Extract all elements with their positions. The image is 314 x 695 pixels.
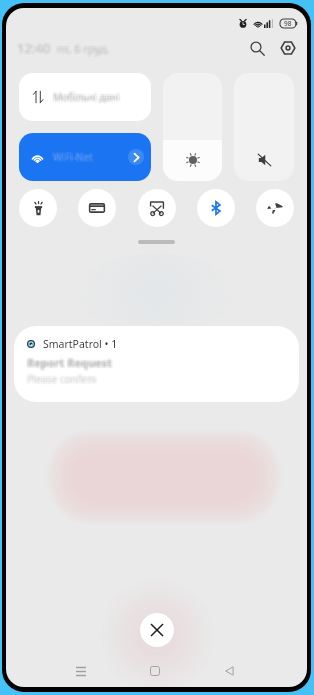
staticText: Мобільні дані xyxy=(55,92,122,106)
staticText: Мобільні дані xyxy=(54,89,121,103)
staticText: Мобільні дані xyxy=(54,90,121,104)
staticText: WiFi-Net xyxy=(54,151,94,165)
staticText: 12:40 xyxy=(19,37,53,55)
staticText: 12:40 xyxy=(18,40,52,58)
button[interactable]: Volume xyxy=(234,73,294,181)
staticText: Мобільні дані xyxy=(55,91,122,105)
staticText: Мобільні дані xyxy=(54,91,121,105)
staticText: 12:40 xyxy=(15,39,49,57)
staticText: 12:40 xyxy=(16,40,50,58)
staticText: Мобільні дані xyxy=(53,88,120,102)
staticText: 12:40 xyxy=(16,40,50,58)
staticText: пт, 6 груд. xyxy=(59,40,112,55)
button[interactable]: SmartPatrol • 1 xyxy=(14,326,299,402)
staticText: Please confirm xyxy=(26,371,96,385)
button[interactable]: Мобільні дані xyxy=(19,73,151,121)
button[interactable]: Clear all notifications xyxy=(140,613,174,647)
staticText: пт, 6 груд. xyxy=(55,40,108,55)
staticText: WiFi-Net xyxy=(54,152,94,166)
staticText: 98 xyxy=(284,19,292,28)
staticText: WiFi-Net xyxy=(53,152,93,166)
staticText: 12:40 xyxy=(16,39,50,57)
button[interactable]: Home xyxy=(139,655,171,687)
button[interactable]: Wi-Fi settings xyxy=(128,149,144,165)
staticText: Мобільні дані xyxy=(54,91,121,105)
staticText: 12:40 xyxy=(19,40,53,58)
staticText: 12:40 xyxy=(17,40,51,58)
button[interactable]: Screenshot xyxy=(138,189,176,227)
staticText: пт, 6 груд. xyxy=(55,40,108,55)
staticText: Please confirm xyxy=(26,371,96,385)
staticText: Please confirm xyxy=(26,373,96,387)
staticText: Report Request xyxy=(26,355,111,370)
staticText: Мобільні дані xyxy=(55,90,122,104)
staticText: 12:40 xyxy=(16,38,50,56)
staticText: пт, 6 груд. xyxy=(58,40,111,55)
staticText: Report Request xyxy=(26,354,111,369)
staticText: Please confirm xyxy=(27,373,97,387)
staticText: Мобільні дані xyxy=(51,89,118,103)
staticText: пт, 6 груд. xyxy=(56,43,109,58)
staticText: 12:40 xyxy=(16,37,50,55)
staticText: пт, 6 груд. xyxy=(59,39,112,54)
button[interactable]: Recents xyxy=(65,655,97,687)
button[interactable]: Bluetooth xyxy=(197,189,235,227)
staticText: Мобільні дані xyxy=(52,88,119,102)
staticText: WiFi-Net xyxy=(51,152,91,166)
staticText: Мобільні дані xyxy=(54,92,121,106)
staticText: 12:40 xyxy=(15,38,49,56)
staticText: WiFi-Net xyxy=(55,149,95,163)
staticText: пт, 6 груд. xyxy=(57,40,110,55)
staticText: 12:40 xyxy=(18,38,52,56)
staticText: Мобільні дані xyxy=(52,91,119,105)
staticText: Мобільні дані xyxy=(54,88,121,102)
staticText: 12:40 xyxy=(17,38,51,56)
staticText: Report Request xyxy=(28,356,113,371)
staticText: Report Request xyxy=(25,357,110,372)
staticText: 12:40 xyxy=(19,41,53,59)
staticText: пт, 6 груд. xyxy=(56,42,109,57)
staticText: пт, 6 груд. xyxy=(56,40,109,55)
staticText: WiFi-Net xyxy=(55,150,95,164)
staticText: Report Request xyxy=(27,354,112,369)
staticText: WiFi-Net xyxy=(52,149,92,163)
button[interactable]: Search xyxy=(244,35,270,61)
button[interactable]: Brightness xyxy=(163,73,222,181)
staticText: Мобільні дані xyxy=(55,91,122,105)
staticText: WiFi-Net xyxy=(54,149,94,163)
staticText: 12:40 xyxy=(17,38,51,56)
staticText: 12:40 xyxy=(18,41,52,59)
staticText: Мобільні дані xyxy=(54,91,121,105)
staticText: Please confirm xyxy=(28,373,98,387)
staticText: Please confirm xyxy=(26,370,96,384)
staticText: Please confirm xyxy=(26,372,96,386)
staticText: Please confirm xyxy=(29,374,99,388)
staticText: Report Request xyxy=(26,356,111,371)
staticText: пт, 6 груд. xyxy=(57,41,110,56)
staticText: пт, 6 груд. xyxy=(57,43,110,58)
staticText: WiFi-Net xyxy=(51,151,91,165)
staticText: WiFi-Net xyxy=(54,148,94,162)
staticText: 12:40 xyxy=(19,40,53,58)
staticText: Report Request xyxy=(27,356,112,371)
staticText: Мобільні дані xyxy=(52,91,119,105)
button[interactable]: Back xyxy=(213,655,245,687)
staticText: Report Request xyxy=(29,355,114,370)
staticText: пт, 6 груд. xyxy=(56,40,109,55)
button[interactable]: Airplane mode xyxy=(256,189,294,227)
staticText: WiFi-Net xyxy=(53,151,93,165)
staticText: Report Request xyxy=(26,353,111,368)
staticText: пт, 6 груд. xyxy=(59,42,112,57)
staticText: Report Request xyxy=(26,357,111,372)
staticText: WiFi-Net xyxy=(54,150,94,164)
staticText: 12:40 xyxy=(18,39,52,57)
staticText: Мобільні дані xyxy=(53,91,120,105)
staticText: Please confirm xyxy=(29,373,99,387)
staticText: Please confirm xyxy=(28,370,98,384)
button[interactable]: WiFi-Net xyxy=(19,133,151,181)
button[interactable]: Wallet xyxy=(78,189,116,227)
button[interactable]: Flashlight xyxy=(19,189,57,227)
staticText: пт, 6 груд. xyxy=(59,40,112,55)
staticText: WiFi-Net xyxy=(54,151,94,165)
button[interactable]: Settings xyxy=(275,35,301,61)
